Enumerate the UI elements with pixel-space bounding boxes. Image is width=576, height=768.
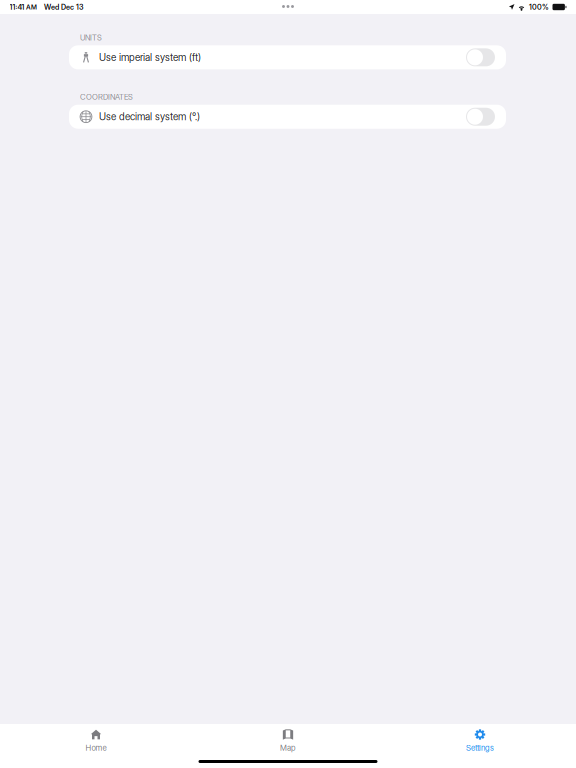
staticText: 100% (529, 3, 549, 11)
button[interactable]: Map (192, 724, 384, 753)
button[interactable]: Use decimal system (°.) (69, 105, 506, 129)
staticText: 11:41 (9, 3, 24, 11)
button[interactable]: Home (0, 724, 192, 753)
staticText: Use imperial system (ft) (99, 51, 201, 63)
staticText: Use decimal system (°.) (99, 111, 200, 123)
button[interactable]: Settings (384, 724, 576, 753)
staticText: Settings (466, 743, 494, 753)
staticText: COORDINATES (80, 92, 133, 102)
staticText: AM (26, 3, 37, 11)
staticText: Wed Dec 13 (44, 3, 83, 11)
staticText: Home (85, 743, 106, 753)
staticText: Map (280, 743, 296, 753)
staticText: UNITS (80, 33, 102, 42)
button[interactable]: Use imperial system (ft) (69, 45, 506, 69)
